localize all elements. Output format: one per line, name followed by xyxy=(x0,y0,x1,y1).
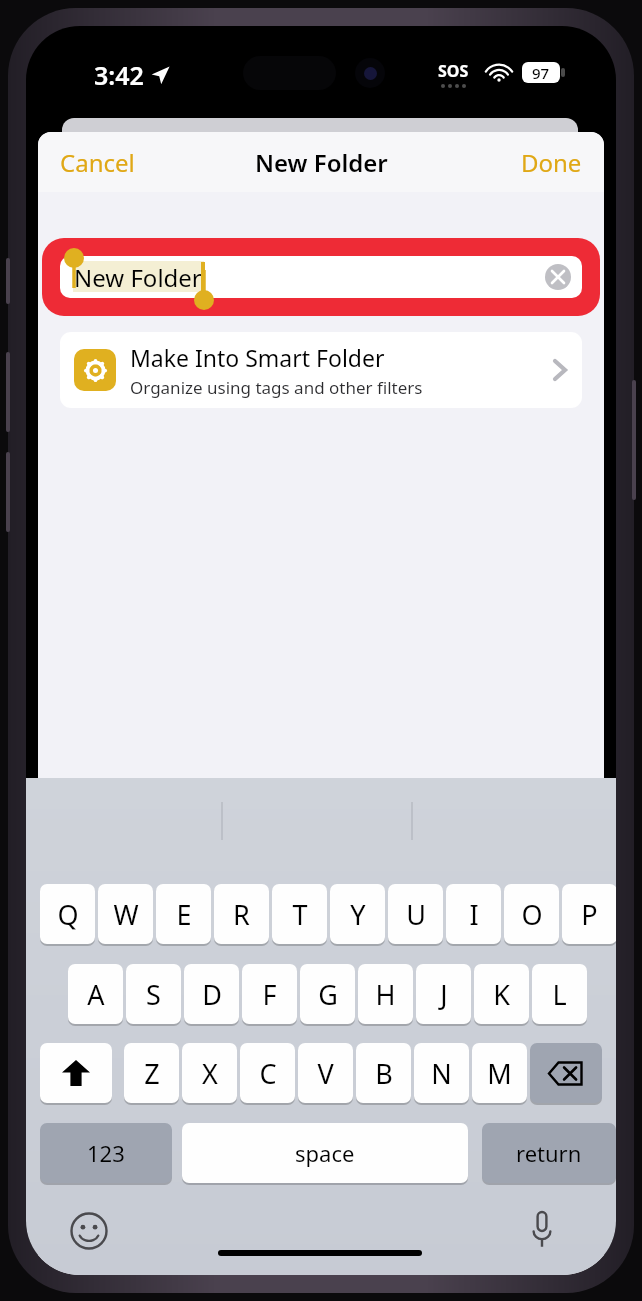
staticText: I xyxy=(469,896,479,933)
button[interactable]: Emoji keyboard xyxy=(68,1210,110,1252)
staticText: F xyxy=(262,976,277,1013)
button[interactable]: S xyxy=(126,964,181,1024)
staticText: G xyxy=(318,976,338,1013)
staticText: E xyxy=(176,896,192,933)
button[interactable]: Z xyxy=(124,1043,179,1103)
button[interactable]: I xyxy=(446,884,501,944)
button[interactable]: M xyxy=(472,1043,527,1103)
staticText: space xyxy=(295,1138,355,1168)
staticText: Make Into Smart Folder xyxy=(130,342,385,373)
button[interactable]: Y xyxy=(330,884,385,944)
staticText: 97 xyxy=(532,63,550,83)
staticText: Organize using tags and other filters xyxy=(130,376,423,399)
button[interactable]: Backspace xyxy=(530,1043,602,1103)
staticText: O xyxy=(521,896,543,933)
staticText: Z xyxy=(144,1055,160,1092)
staticText: H xyxy=(375,976,396,1013)
staticText: W xyxy=(113,896,139,933)
staticText: K xyxy=(493,976,510,1013)
staticText: A xyxy=(87,976,105,1013)
button[interactable]: New Folder xyxy=(60,256,582,298)
staticText: V xyxy=(317,1055,334,1092)
button[interactable]: R xyxy=(214,884,269,944)
button[interactable]: B xyxy=(356,1043,411,1103)
staticText: return xyxy=(516,1138,582,1168)
button[interactable]: C xyxy=(240,1043,295,1103)
staticText: T xyxy=(292,896,308,933)
staticText: B xyxy=(375,1055,393,1092)
staticText: X xyxy=(202,1055,218,1092)
staticText: D xyxy=(202,976,222,1013)
button[interactable]: Cancel xyxy=(48,138,147,187)
button[interactable]: P xyxy=(562,884,616,944)
button[interactable]: L xyxy=(532,964,587,1024)
button[interactable]: V xyxy=(298,1043,353,1103)
staticText: U xyxy=(406,896,426,933)
button[interactable]: G xyxy=(300,964,355,1024)
button[interactable]: F xyxy=(242,964,297,1024)
button[interactable]: H xyxy=(358,964,413,1024)
staticText: N xyxy=(431,1055,452,1092)
staticText: Y xyxy=(350,896,366,933)
button[interactable]: Shift xyxy=(40,1043,112,1103)
staticText: SOS xyxy=(438,60,469,82)
staticText: Done xyxy=(521,146,582,179)
staticText: C xyxy=(259,1055,277,1092)
button[interactable]: J xyxy=(416,964,471,1024)
button[interactable]: N xyxy=(414,1043,469,1103)
staticText: P xyxy=(581,896,598,933)
button[interactable]: X xyxy=(182,1043,237,1103)
button[interactable]: 123 xyxy=(40,1123,172,1183)
staticText: New Folder xyxy=(74,261,202,294)
button[interactable]: D xyxy=(184,964,239,1024)
button[interactable]: W xyxy=(98,884,153,944)
staticText: 123 xyxy=(87,1138,125,1168)
staticText: M xyxy=(487,1055,512,1092)
staticText: 3:42 xyxy=(94,58,144,92)
button[interactable]: Clear text xyxy=(545,264,571,290)
staticText: S xyxy=(146,976,161,1013)
button[interactable]: Dictation xyxy=(520,1208,564,1252)
button[interactable]: E xyxy=(156,884,211,944)
staticText: L xyxy=(552,976,567,1013)
staticText: Cancel xyxy=(60,146,135,179)
staticText: New Folder xyxy=(255,146,388,179)
button[interactable]: space xyxy=(182,1123,468,1183)
staticText: R xyxy=(233,896,250,933)
button[interactable]: Make Into Smart Folder xyxy=(60,332,582,408)
button[interactable]: O xyxy=(504,884,559,944)
staticText: J xyxy=(440,976,448,1013)
staticText: Q xyxy=(57,896,79,933)
button[interactable]: U xyxy=(388,884,443,944)
button[interactable]: Done xyxy=(509,138,594,187)
button[interactable]: K xyxy=(474,964,529,1024)
button[interactable]: return xyxy=(482,1123,616,1183)
button[interactable]: Q xyxy=(40,884,95,944)
button[interactable]: A xyxy=(68,964,123,1024)
button[interactable]: T xyxy=(272,884,327,944)
